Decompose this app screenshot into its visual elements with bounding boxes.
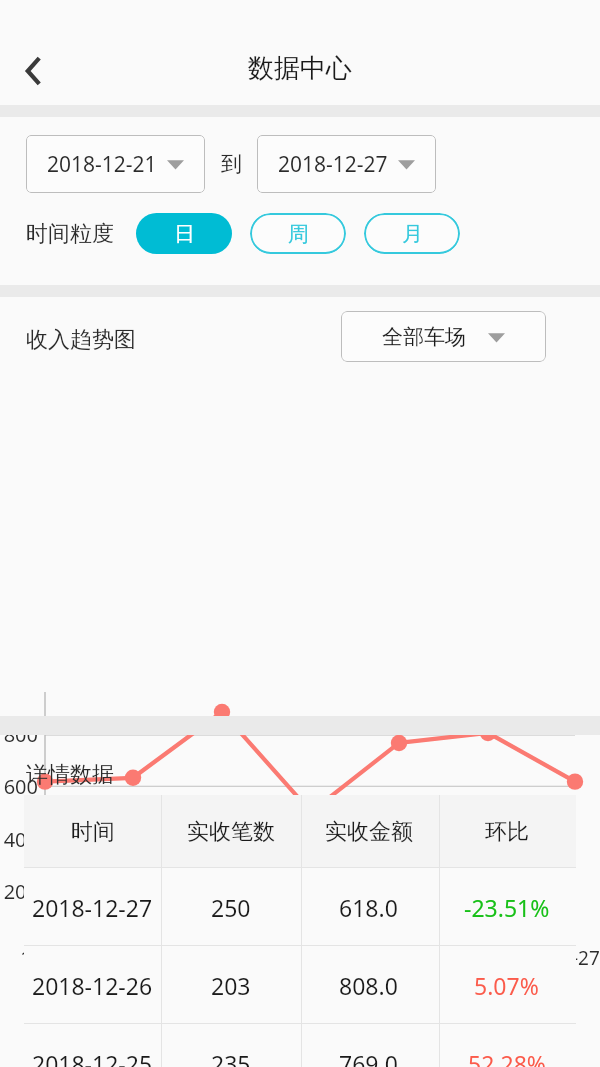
staticText: 235: [211, 1048, 251, 1067]
staticText: 日: [174, 221, 195, 247]
staticText: 600: [0, 773, 38, 800]
staticText: 12-22: [88, 945, 178, 971]
staticText: 5.07%: [474, 970, 539, 1001]
staticText: 实收笔数: [187, 818, 275, 846]
staticText: 收入趋势图: [26, 326, 136, 354]
staticText: 2018-12-27: [32, 892, 153, 923]
button[interactable]: 月: [364, 213, 460, 254]
staticText: 800: [0, 721, 38, 748]
staticText: -23.51%: [464, 892, 550, 923]
staticText: 203: [211, 970, 251, 1001]
staticText: 2018-12-27: [278, 150, 388, 179]
staticText: 详情数据: [26, 761, 114, 789]
staticText: 12-26: [443, 945, 533, 971]
button[interactable]: 2018-12-27: [257, 135, 436, 193]
button[interactable]: 2018-12-21: [26, 135, 205, 193]
button[interactable]: 2018-12-26: [24, 946, 576, 1024]
button[interactable]: 日: [136, 213, 232, 254]
staticText: 12-21: [0, 945, 90, 971]
staticText: 12-24: [266, 945, 356, 971]
staticText: 618.0: [339, 892, 398, 923]
button[interactable]: 全部车场: [341, 311, 546, 362]
staticText: 12-25: [354, 945, 444, 971]
staticText: 2018-12-26: [32, 970, 153, 1001]
staticText: 12-23: [177, 945, 267, 971]
staticText: 月: [402, 221, 423, 247]
staticText: 52.28%: [468, 1048, 546, 1067]
button[interactable]: Back: [0, 38, 66, 104]
staticText: 周: [288, 221, 309, 247]
staticText: 12-27: [530, 945, 600, 971]
staticText: 环比: [485, 818, 529, 846]
staticText: 实收金额: [325, 818, 413, 846]
button[interactable]: 2018-12-25: [24, 1024, 576, 1067]
staticText: 时间粒度: [26, 220, 114, 248]
button[interactable]: 2018-12-27: [24, 868, 576, 946]
button[interactable]: 时间: [24, 795, 576, 868]
staticText: 769.0: [339, 1048, 398, 1067]
staticText: 400: [0, 826, 38, 853]
staticText: 250: [211, 892, 251, 923]
staticText: 时间: [71, 818, 115, 846]
staticText: 2018-12-21: [47, 150, 157, 179]
staticText: 2018-12-25: [32, 1048, 153, 1067]
button[interactable]: 周: [250, 213, 346, 254]
staticText: 全部车场: [382, 324, 466, 350]
staticText: 200: [0, 878, 38, 905]
staticText: 数据中心: [0, 52, 600, 85]
staticText: 808.0: [339, 970, 398, 1001]
staticText: 到: [221, 151, 242, 177]
staticText: 0: [0, 929, 38, 956]
